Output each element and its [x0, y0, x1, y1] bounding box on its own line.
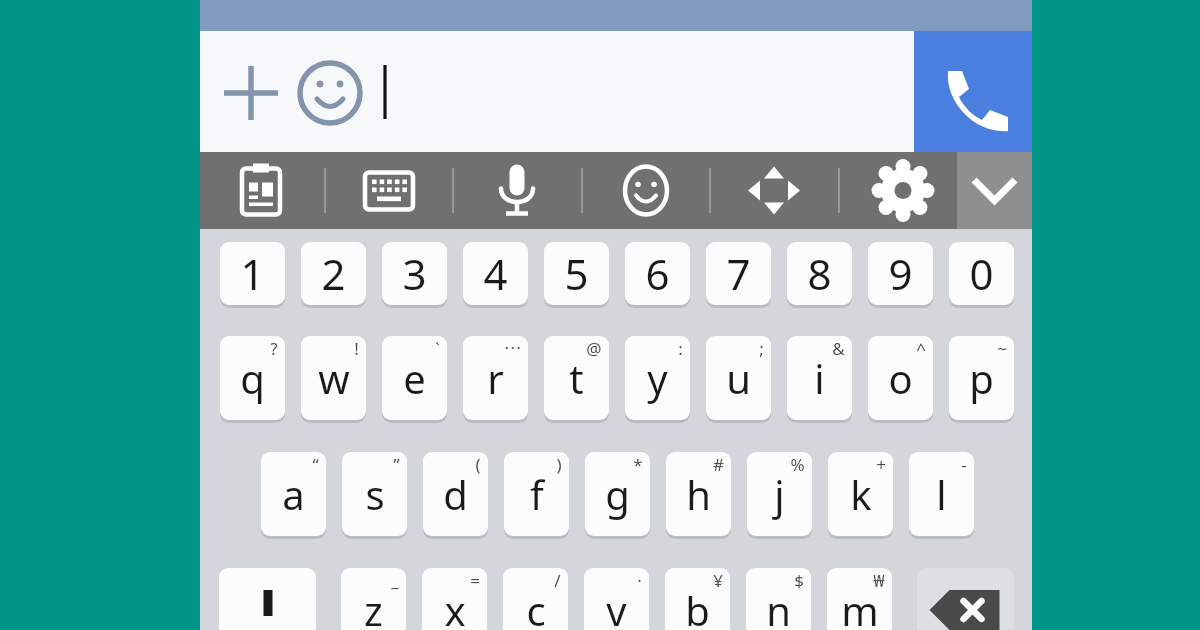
- button[interactable]: o: [868, 336, 933, 420]
- button[interactable]: y: [625, 336, 690, 420]
- staticText: #: [713, 453, 724, 476]
- staticText: 4: [483, 245, 508, 302]
- staticText: @: [586, 337, 602, 360]
- staticText: %: [790, 453, 805, 476]
- staticText: e: [403, 351, 426, 405]
- button[interactable]: Voice input: [462, 152, 572, 229]
- button[interactable]: 6: [625, 242, 690, 305]
- staticText: ^: [916, 337, 926, 360]
- button[interactable]: [917, 568, 1014, 630]
- button[interactable]: h: [666, 452, 731, 536]
- button[interactable]: 7: [706, 242, 771, 305]
- staticText: +: [876, 453, 886, 476]
- staticText: j: [774, 467, 785, 521]
- button[interactable]: n: [746, 568, 811, 630]
- staticText: ): [556, 453, 562, 476]
- staticText: b: [685, 583, 710, 630]
- button[interactable]: f: [504, 452, 569, 536]
- button[interactable]: 0: [949, 242, 1014, 305]
- staticText: `: [435, 337, 440, 360]
- staticText: ?: [270, 337, 278, 360]
- button[interactable]: 3: [382, 242, 447, 305]
- button[interactable]: m: [827, 568, 892, 630]
- staticText: g: [605, 467, 630, 521]
- staticText: 9: [888, 245, 913, 302]
- button[interactable]: 1: [220, 242, 285, 305]
- staticText: “: [312, 453, 319, 476]
- staticText: ~: [997, 337, 1007, 360]
- button[interactable]: x: [422, 568, 487, 630]
- staticText: ₩: [873, 569, 885, 592]
- staticText: i: [814, 351, 825, 405]
- button[interactable]: r: [463, 336, 528, 420]
- button[interactable]: k: [828, 452, 893, 536]
- staticText: ⋯: [504, 337, 521, 357]
- button[interactable]: c: [503, 568, 568, 630]
- staticText: :: [678, 337, 683, 360]
- button[interactable]: 8: [787, 242, 852, 305]
- staticText: ¥: [713, 569, 723, 592]
- staticText: 5: [564, 245, 589, 302]
- staticText: $: [794, 569, 804, 592]
- button[interactable]: v: [584, 568, 649, 630]
- button[interactable]: [219, 568, 316, 630]
- staticText: 8: [807, 245, 832, 302]
- button[interactable]: z: [341, 568, 406, 630]
- button[interactable]: Call: [914, 31, 1032, 152]
- button[interactable]: t: [544, 336, 609, 420]
- staticText: v: [606, 583, 627, 630]
- button[interactable]: g: [585, 452, 650, 536]
- button[interactable]: Keyboard: [334, 152, 444, 229]
- staticText: 6: [645, 245, 670, 302]
- button[interactable]: p: [949, 336, 1014, 420]
- button[interactable]: b: [665, 568, 730, 630]
- button[interactable]: Clipboard: [206, 152, 316, 229]
- staticText: p: [969, 351, 994, 405]
- staticText: o: [888, 351, 913, 405]
- button[interactable]: 9: [868, 242, 933, 305]
- button[interactable]: e: [382, 336, 447, 420]
- button[interactable]: [200, 31, 914, 152]
- button[interactable]: 4: [463, 242, 528, 305]
- staticText: a: [282, 467, 305, 521]
- staticText: 7: [726, 245, 751, 302]
- staticText: (: [475, 453, 481, 476]
- button[interactable]: 2: [301, 242, 366, 305]
- button[interactable]: l: [909, 452, 974, 536]
- button[interactable]: d: [423, 452, 488, 536]
- staticText: h: [686, 467, 711, 521]
- staticText: ;: [759, 337, 764, 360]
- button[interactable]: s: [342, 452, 407, 536]
- button[interactable]: a: [261, 452, 326, 536]
- button[interactable]: q: [220, 336, 285, 420]
- button[interactable]: i: [787, 336, 852, 420]
- staticText: r: [487, 351, 504, 405]
- staticText: &: [832, 337, 845, 360]
- staticText: z: [364, 583, 383, 630]
- staticText: /: [554, 569, 561, 592]
- staticText: =: [470, 569, 480, 592]
- staticText: *: [633, 453, 643, 476]
- staticText: _: [391, 569, 399, 592]
- button[interactable]: j: [747, 452, 812, 536]
- staticText: w: [318, 351, 350, 405]
- staticText: q: [240, 351, 265, 405]
- staticText: m: [841, 583, 879, 630]
- button[interactable]: Emoji: [591, 152, 701, 229]
- staticText: s: [365, 467, 385, 521]
- staticText: t: [569, 351, 584, 405]
- staticText: d: [443, 467, 468, 521]
- staticText: 3: [402, 245, 427, 302]
- button[interactable]: u: [706, 336, 771, 420]
- staticText: 1: [240, 245, 265, 302]
- staticText: u: [726, 351, 751, 405]
- button[interactable]: Settings: [848, 152, 958, 229]
- staticText: x: [444, 583, 466, 630]
- button[interactable]: 5: [544, 242, 609, 305]
- staticText: n: [766, 583, 791, 630]
- staticText: ·: [637, 569, 642, 592]
- button[interactable]: Hide keyboard: [957, 152, 1032, 229]
- staticText: y: [647, 351, 668, 405]
- button[interactable]: Move cursor: [719, 152, 829, 229]
- button[interactable]: w: [301, 336, 366, 420]
